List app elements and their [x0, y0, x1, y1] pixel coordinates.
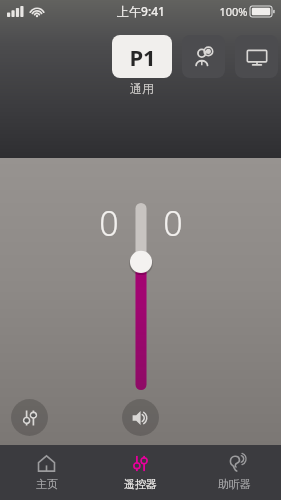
staticText: 助听器 — [218, 477, 251, 491]
staticText: 0 — [99, 200, 119, 246]
staticText: 遥控器 — [124, 477, 157, 491]
button[interactable]: TV program — [235, 35, 278, 78]
staticText: 0 — [163, 200, 183, 246]
button[interactable]: 助听器 — [187, 445, 281, 500]
button[interactable]: 遥控器 — [93, 445, 187, 500]
button[interactable]: Equalizer — [11, 399, 48, 436]
button[interactable]: Volume — [122, 399, 159, 436]
button[interactable]: 主页 — [0, 445, 93, 500]
button[interactable]: Conversation program — [182, 35, 225, 78]
staticText: P1 — [129, 42, 156, 72]
staticText: 通用 — [130, 81, 154, 96]
staticText: 上午9:41 — [117, 3, 165, 19]
staticText: 主页 — [36, 477, 58, 491]
button[interactable]: P1 — [112, 35, 172, 78]
staticText: 100% — [219, 4, 248, 19]
